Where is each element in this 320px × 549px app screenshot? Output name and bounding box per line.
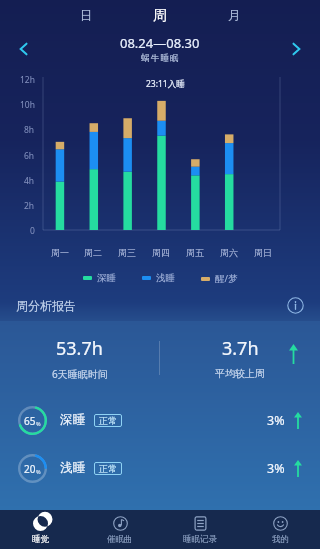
button[interactable]: 醒/梦 [201, 272, 238, 285]
staticText: 睡眠记录 [183, 534, 217, 545]
staticText: 23:11入睡 [146, 78, 185, 90]
staticText: 月 [228, 8, 241, 24]
staticText: 醒/梦 [215, 272, 238, 285]
button[interactable]: 睡眠记录 [160, 510, 240, 549]
staticText: 2h [24, 200, 35, 212]
staticText: % [36, 468, 41, 475]
button[interactable]: 浅睡 [142, 272, 175, 284]
staticText: 浅睡 [156, 272, 175, 284]
staticText: 我的 [272, 534, 289, 545]
button[interactable]: 周 [145, 3, 175, 29]
staticText: 20 [24, 462, 36, 476]
staticText: 周四 [152, 247, 170, 258]
button[interactable]: 日 [71, 3, 101, 29]
button[interactable]: 月 [219, 3, 249, 29]
staticText: 正常 [99, 415, 117, 426]
button[interactable]: 20 [0, 453, 320, 483]
other: Info [287, 297, 304, 314]
staticText: 周一 [51, 247, 69, 258]
button[interactable]: Next week [280, 33, 312, 65]
staticText: 平均较上周 [215, 367, 265, 380]
staticText: 周 [153, 7, 167, 25]
staticText: 3.7h [222, 336, 259, 361]
staticText: 10h [20, 99, 35, 111]
staticText: 65 [24, 414, 36, 428]
staticText: 蜗牛睡眠 [141, 53, 180, 64]
staticText: 周三 [118, 247, 136, 258]
staticText: 浅睡 [60, 460, 85, 476]
staticText: 4h [24, 175, 35, 187]
staticText: 0 [30, 225, 35, 237]
staticText: 周五 [186, 247, 204, 258]
staticText: 正常 [99, 463, 117, 474]
staticText: 周分析报告 [16, 298, 76, 313]
staticText: 8h [24, 124, 35, 136]
staticText: 12h [20, 74, 35, 86]
staticText: 周六 [220, 247, 238, 258]
button[interactable]: 我的 [240, 510, 320, 549]
staticText: 催眠曲 [107, 534, 133, 545]
staticText: 6h [24, 150, 35, 162]
button[interactable]: 睡觉 [0, 510, 80, 549]
staticText: 08.24—08.30 [120, 34, 200, 52]
staticText: 日 [80, 8, 93, 24]
staticText: 3% [267, 412, 285, 429]
staticText: 周二 [84, 247, 102, 258]
staticText: 53.7h [56, 336, 103, 361]
staticText: 周日 [254, 247, 272, 258]
staticText: 深睡 [60, 412, 85, 428]
staticText: 睡觉 [32, 534, 49, 545]
button[interactable]: 65 [0, 405, 320, 435]
button[interactable]: 深睡 [83, 272, 116, 284]
staticText: 6天睡眠时间 [52, 367, 108, 381]
button[interactable]: 催眠曲 [80, 510, 160, 549]
button[interactable]: Previous week [8, 33, 40, 65]
button[interactable]: 周分析报告 [0, 289, 320, 321]
staticText: 3% [267, 460, 285, 477]
staticText: 深睡 [97, 272, 116, 284]
staticText: % [36, 420, 41, 427]
